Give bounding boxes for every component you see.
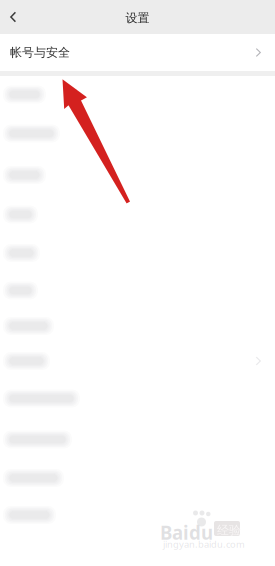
button[interactable]: 帐号与安全 <box>0 34 275 71</box>
staticText: 帐号与安全 <box>10 45 70 60</box>
staticText: Baidu <box>160 520 213 545</box>
button[interactable]: Back <box>0 0 40 34</box>
staticText: 设置 <box>125 11 149 25</box>
staticText: 经验 <box>217 523 241 538</box>
staticText: jingyan.baidu.com <box>163 538 245 550</box>
